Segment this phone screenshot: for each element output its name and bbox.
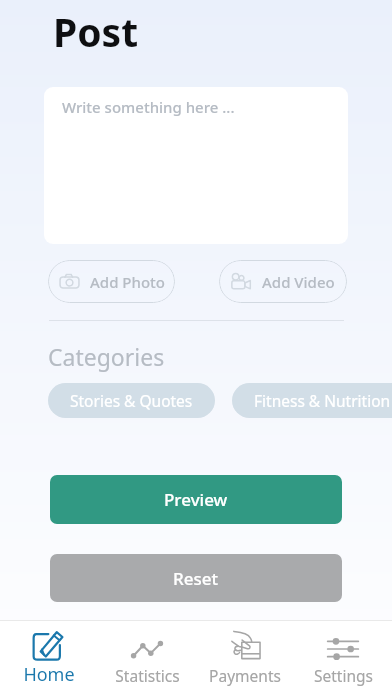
staticText: Stories & Quotes: [70, 390, 193, 411]
button[interactable]: Fitness & Nutrition: [232, 383, 392, 418]
staticText: Payments: [209, 665, 281, 686]
button[interactable]: Payments: [196, 621, 294, 696]
button[interactable]: Home: [0, 621, 98, 696]
staticText: Write something here ...: [62, 97, 235, 117]
staticText: Categories: [48, 341, 165, 372]
staticText: Add Video: [262, 272, 335, 292]
button[interactable]: Write something here: [44, 87, 348, 244]
staticText: Fitness & Nutrition: [254, 390, 391, 411]
staticText: Home: [23, 662, 75, 687]
button[interactable]: Statistics: [98, 621, 196, 696]
staticText: Add Photo: [90, 272, 165, 292]
staticText: Post: [53, 5, 139, 58]
button[interactable]: Add Photo: [48, 260, 175, 303]
button[interactable]: Add Video: [219, 260, 347, 303]
button[interactable]: Reset: [50, 554, 342, 602]
staticText: Statistics: [115, 665, 180, 686]
staticText: Reset: [173, 567, 219, 590]
button[interactable]: Settings: [294, 621, 392, 696]
staticText: Preview: [164, 488, 228, 511]
button[interactable]: Stories & Quotes: [48, 383, 215, 418]
button[interactable]: Preview: [50, 475, 342, 524]
staticText: Settings: [314, 665, 373, 686]
